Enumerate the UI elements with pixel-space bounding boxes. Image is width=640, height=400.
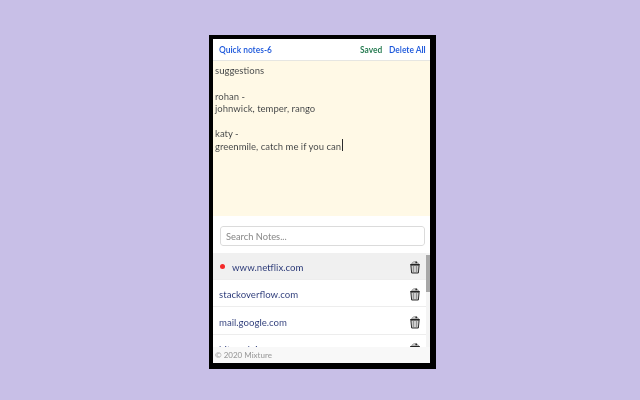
staticText: johnwick, temper, rango (215, 103, 316, 114)
button[interactable]: Delete (407, 259, 423, 275)
button[interactable]: Quick notes-6 (213, 45, 272, 55)
button[interactable]: bitsandpieces.com (213, 335, 430, 347)
staticText: Search Notes... (226, 231, 287, 242)
staticText: © 2020 Mixture (215, 350, 272, 360)
button[interactable]: www.netflix.com (213, 253, 430, 279)
button[interactable]: mail.google.com (213, 308, 430, 334)
button[interactable]: Delete All (389, 45, 430, 55)
button[interactable]: suggestions (213, 61, 430, 216)
staticText: www.netflix.com (232, 262, 304, 274)
button[interactable]: stackoverflow.com (213, 280, 430, 306)
button[interactable]: Delete (407, 314, 423, 330)
button[interactable]: Search Notes... (220, 226, 425, 246)
staticText: stackoverflow.com (219, 289, 299, 301)
button[interactable]: Saved (360, 45, 383, 55)
button[interactable]: Delete (407, 286, 423, 302)
button[interactable]: Delete (407, 341, 423, 347)
staticText: suggestions (215, 65, 265, 76)
staticText: rohan - (215, 91, 246, 102)
staticText: bitsandpieces.com (219, 344, 297, 347)
staticText: mail.google.com (219, 317, 287, 329)
staticText: greenmile, catch me if you can (215, 141, 342, 152)
staticText: katy - (215, 128, 239, 139)
